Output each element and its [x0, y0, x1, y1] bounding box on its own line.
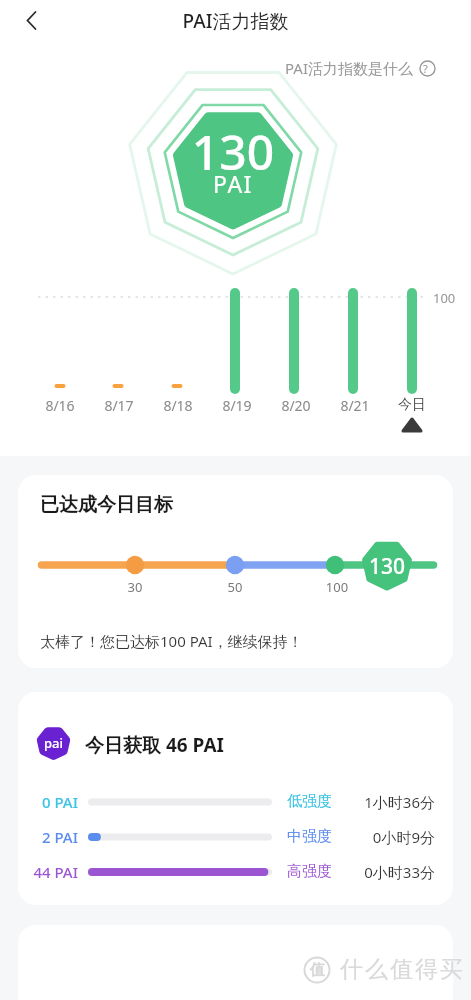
staticText: 8/20 [266, 396, 326, 415]
staticText: PAI活力指数是什么 [285, 58, 413, 78]
staticText: 0 PAI [18, 792, 78, 812]
staticText: pai [36, 734, 71, 752]
staticText: 100 [433, 289, 471, 307]
staticText: 0小时9分 [335, 827, 435, 847]
staticText: PAI [113, 168, 353, 199]
staticText: 100 [312, 578, 362, 596]
staticText: 今日 [382, 396, 442, 414]
staticText: 8/18 [148, 396, 208, 415]
staticText: 30 [110, 578, 160, 596]
staticText: 太棒了！您已达标100 PAI，继续保持！ [40, 631, 440, 651]
staticText: 130 [113, 119, 353, 184]
staticText: 8/21 [325, 396, 385, 415]
staticText: 8/17 [89, 396, 149, 415]
staticText: 今日获取 46 PAI [85, 732, 385, 758]
staticText: 中强度 [287, 827, 357, 846]
staticText: 130 [357, 552, 417, 581]
staticText: 值 [310, 961, 325, 980]
staticText: PAI活力指数 [0, 8, 471, 34]
staticText: 0小时33分 [335, 862, 435, 882]
staticText: 高强度 [287, 862, 357, 881]
staticText: ? [423, 61, 428, 76]
staticText: 8/19 [207, 396, 267, 415]
staticText: 2 PAI [18, 827, 78, 847]
staticText: 44 PAI [18, 862, 78, 882]
button[interactable]: PAI活力指数是什么 [285, 58, 441, 78]
staticText: 1小时36分 [335, 792, 435, 812]
staticText: 已达成今日目标 [40, 493, 340, 517]
staticText: 8/16 [30, 396, 90, 415]
staticText: 低强度 [287, 792, 357, 811]
staticText: 什么值得买 [339, 955, 464, 984]
button[interactable] [16, 4, 48, 36]
staticText: 50 [210, 578, 260, 596]
